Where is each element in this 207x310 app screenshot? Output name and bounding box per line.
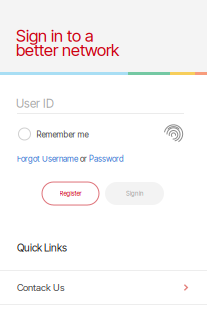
button[interactable]: Forgot Username [17, 154, 124, 164]
staticText: Contack Us [17, 282, 65, 293]
staticText: Quick Links [17, 241, 67, 254]
button[interactable]: Register [42, 182, 99, 205]
staticText: Sign in to a [16, 26, 94, 46]
button[interactable]: Remember me [18, 127, 88, 141]
staticText: better network [16, 40, 119, 60]
button[interactable]: Contack Us [0, 271, 207, 304]
staticText: Password [89, 154, 124, 164]
button[interactable]: Sign in with Touch ID [164, 122, 184, 144]
staticText: or [80, 154, 89, 164]
button[interactable]: Sign in [105, 182, 164, 205]
staticText: Sign in [126, 190, 143, 197]
staticText: Register [59, 190, 81, 197]
staticText: User ID [16, 96, 54, 110]
staticText: Forgot Username [17, 154, 80, 164]
staticText: Remember me [36, 130, 88, 139]
